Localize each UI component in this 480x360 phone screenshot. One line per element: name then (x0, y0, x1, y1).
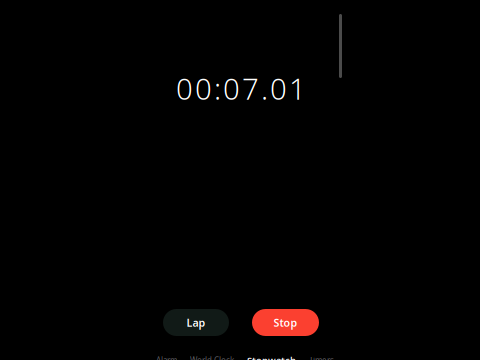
staticText: Lap (186, 315, 205, 330)
button[interactable]: Stop (252, 309, 319, 336)
button[interactable]: Alarm (156, 355, 177, 360)
staticText: Stop (273, 315, 297, 330)
button[interactable]: World Clock (190, 355, 234, 360)
staticText: Alarm (156, 355, 177, 360)
button[interactable]: Timers (309, 355, 334, 360)
staticText: Timers (309, 355, 334, 360)
button[interactable]: Stopwatch (247, 354, 296, 360)
staticText: World Clock (190, 355, 234, 360)
button[interactable]: Lap (163, 309, 229, 336)
staticText: 00:07.01 (176, 69, 306, 108)
staticText: Stopwatch (247, 354, 296, 360)
